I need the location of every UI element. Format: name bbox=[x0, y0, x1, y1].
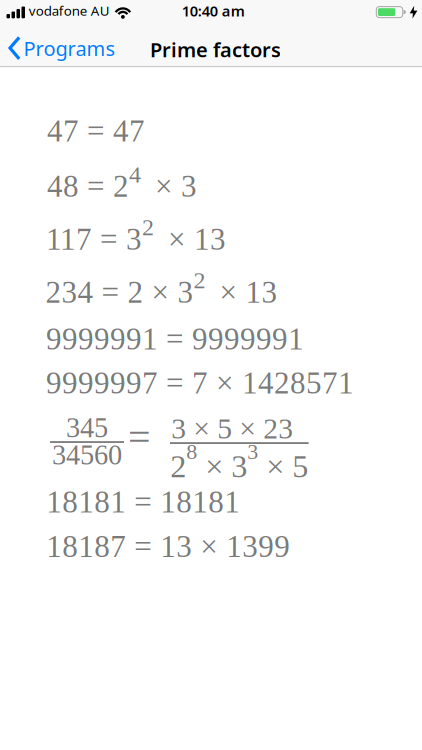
staticText: Prime factors bbox=[150, 36, 281, 63]
staticText: 18187 = 13 × 1399 bbox=[46, 529, 290, 564]
staticText: 48 = 24 × 3 bbox=[47, 161, 197, 203]
staticText: vodafone AU bbox=[29, 2, 110, 19]
staticText: 345 bbox=[66, 412, 108, 443]
staticText: 9999997 = 7 × 1428571 bbox=[46, 366, 354, 400]
staticText: 18181 = 18181 bbox=[46, 485, 240, 519]
button[interactable]: Programs bbox=[8, 35, 115, 62]
staticText: 3 × 5 × 23 bbox=[171, 412, 307, 445]
staticText: 117 = 32 × 13 bbox=[46, 214, 226, 256]
staticText: 9999991 = 9999991 bbox=[46, 322, 304, 356]
staticText: 34560 bbox=[52, 439, 122, 470]
staticText: = bbox=[128, 415, 151, 459]
staticText: Programs bbox=[23, 35, 115, 62]
staticText: 47 = 47 bbox=[47, 114, 145, 148]
staticText: 10:40 am bbox=[182, 1, 245, 20]
staticText: 28 × 33 × 5 bbox=[170, 440, 308, 484]
staticText: 234 = 2 × 32 × 13 bbox=[46, 267, 278, 309]
